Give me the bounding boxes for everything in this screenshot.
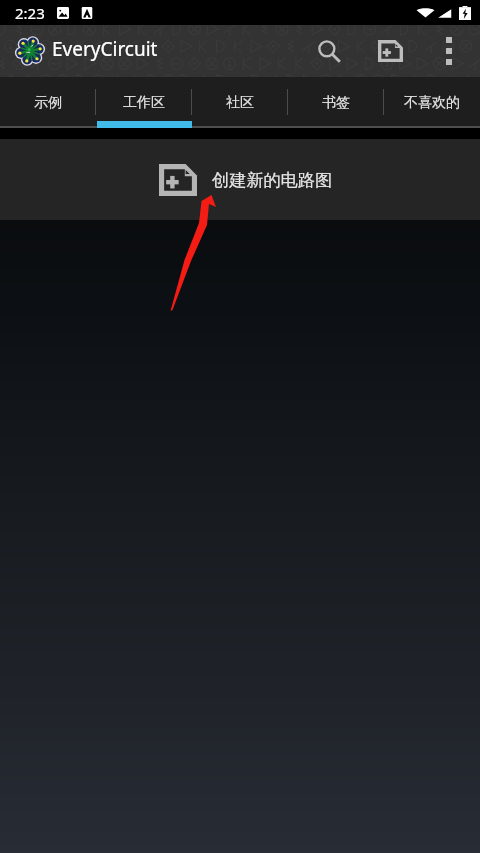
staticText: 工作区 — [123, 94, 165, 112]
button[interactable]: 书签 — [288, 77, 384, 128]
staticText: 不喜欢的 — [404, 94, 460, 112]
button[interactable]: New circuit — [354, 25, 426, 77]
staticText: EveryCircuit — [52, 36, 158, 62]
button[interactable]: 不喜欢的 — [384, 77, 480, 128]
staticText: 创建新的电路图 — [212, 169, 333, 191]
button[interactable]: 示例 — [0, 77, 96, 128]
button[interactable]: 工作区 — [96, 77, 192, 128]
button[interactable]: Search — [304, 25, 354, 77]
staticText: 社区 — [226, 94, 254, 112]
staticText: 示例 — [34, 94, 62, 112]
button[interactable]: More options — [426, 25, 472, 77]
staticText: 2:23 — [15, 3, 45, 23]
button[interactable]: 社区 — [192, 77, 288, 128]
button[interactable]: 创建新的电路图 — [0, 139, 480, 220]
staticText: 书签 — [322, 94, 350, 112]
